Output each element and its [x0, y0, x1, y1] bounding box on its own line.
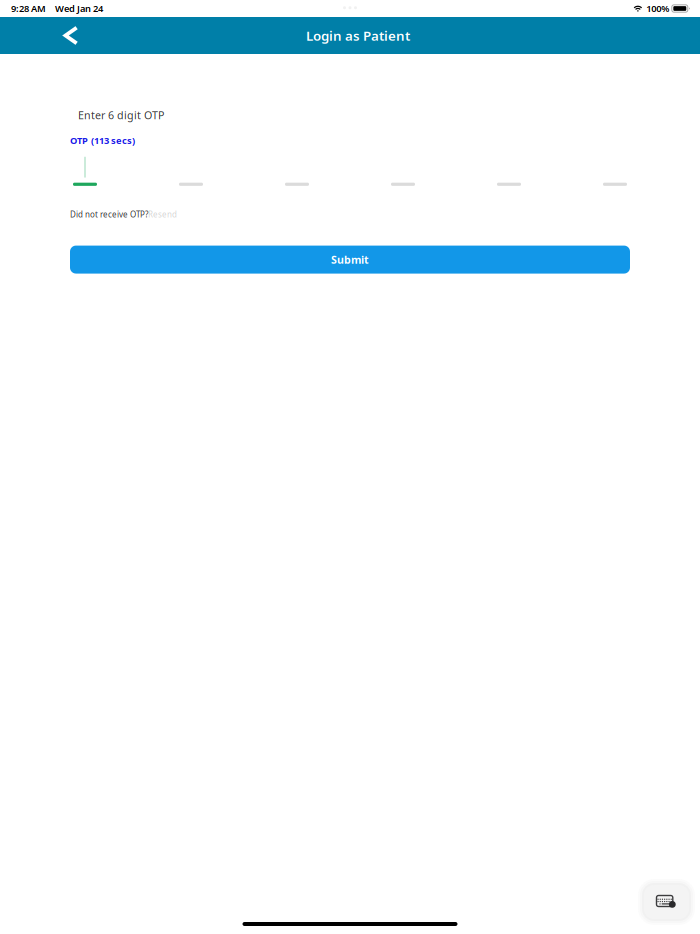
staticText: Login as Patient	[306, 27, 410, 44]
staticText: OTP	[70, 134, 88, 147]
button[interactable]: Dismiss keyboard	[644, 885, 689, 919]
staticText: Resend	[148, 209, 177, 220]
staticText: Enter 6 digit OTP	[78, 108, 164, 122]
button[interactable]: Resend	[148, 209, 177, 220]
staticText: Wed Jan 24	[55, 2, 103, 15]
staticText: 9:28 AM	[11, 2, 46, 15]
button[interactable]: Back	[56, 18, 85, 53]
staticText: Submit	[331, 252, 369, 267]
staticText: (113 secs)	[91, 134, 135, 147]
button[interactable]: Submit	[70, 246, 630, 274]
staticText: 100%	[646, 2, 669, 15]
staticText: Did not receive OTP?	[70, 209, 148, 220]
